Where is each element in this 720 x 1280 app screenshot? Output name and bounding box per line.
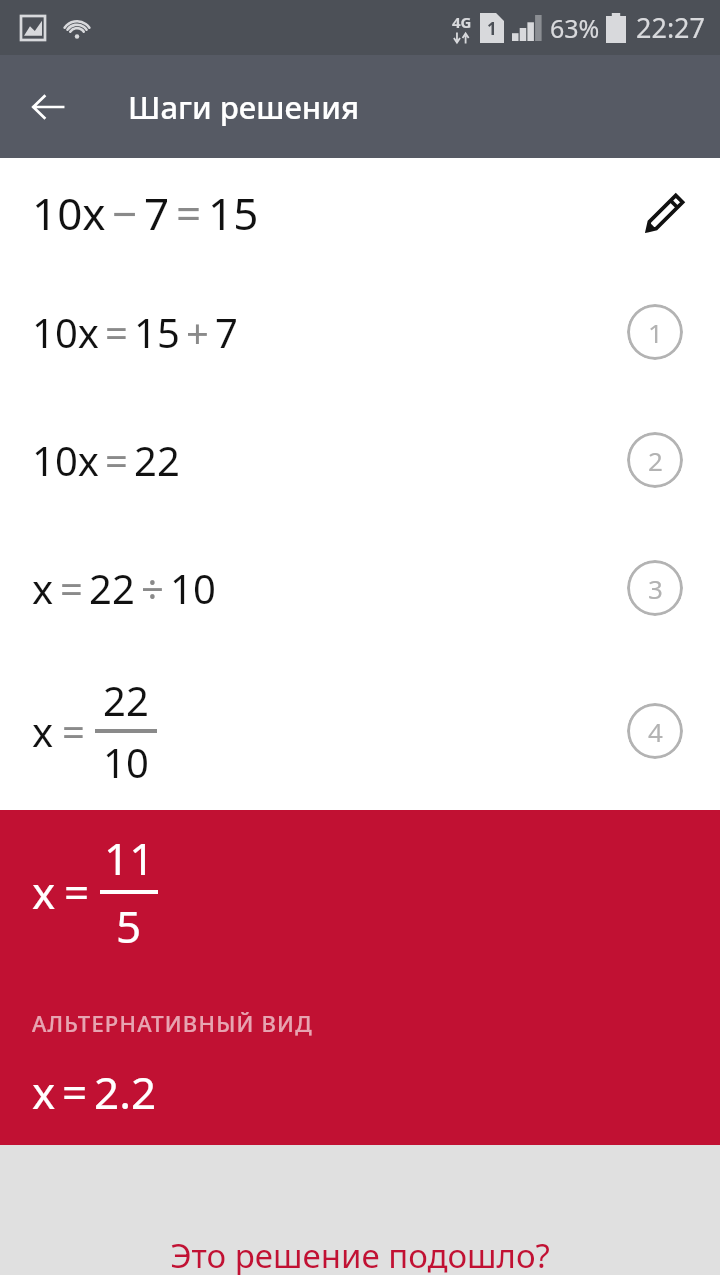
staticText: 22 xyxy=(103,673,149,727)
staticText: 2.2 xyxy=(94,1062,157,1122)
staticText: x xyxy=(32,561,54,615)
staticText: = xyxy=(105,305,128,359)
staticText: 22 xyxy=(89,561,135,615)
staticText: = xyxy=(105,433,128,487)
staticText: 4G xyxy=(452,12,472,32)
button[interactable]: 3 xyxy=(627,560,683,616)
button[interactable]: Это решение подошло? xyxy=(170,1233,550,1275)
staticText: 10 xyxy=(170,561,216,615)
staticText: = xyxy=(62,1062,88,1122)
button[interactable]: 10x xyxy=(0,268,720,396)
staticText: Шаги решения xyxy=(128,86,360,128)
button[interactable]: x xyxy=(0,652,720,810)
staticText: x xyxy=(32,704,54,758)
button[interactable]: Back xyxy=(18,77,78,137)
button[interactable]: 10x xyxy=(0,158,720,268)
staticText: 10 xyxy=(103,735,149,789)
staticText: 1 xyxy=(487,17,497,40)
staticText: 2 xyxy=(648,443,663,478)
staticText: + xyxy=(186,305,209,359)
staticText: 5 xyxy=(116,896,142,956)
staticText: ÷ xyxy=(141,561,164,615)
staticText: = xyxy=(62,704,85,758)
button[interactable]: Edit equation xyxy=(636,184,694,242)
button[interactable]: 4 xyxy=(627,703,683,759)
staticText: 10x xyxy=(32,433,99,487)
staticText: x xyxy=(32,862,56,922)
staticText: 10x xyxy=(32,305,99,359)
button[interactable]: x xyxy=(0,810,720,1145)
staticText: 15 xyxy=(134,305,180,359)
staticText: АЛЬТЕРНАТИВНЫЙ ВИД xyxy=(32,1008,313,1038)
staticText: x xyxy=(32,1062,56,1122)
staticText: 22:27 xyxy=(636,9,706,46)
staticText: 10x xyxy=(32,183,106,243)
staticText: 7 xyxy=(144,183,170,243)
button[interactable]: 10x xyxy=(0,396,720,524)
staticText: 11 xyxy=(104,828,155,888)
button[interactable]: x xyxy=(0,524,720,652)
staticText: − xyxy=(112,183,138,243)
staticText: 22 xyxy=(134,433,180,487)
staticText: 1 xyxy=(648,315,663,350)
staticText: 15 xyxy=(208,183,259,243)
staticText: 4 xyxy=(648,714,663,749)
staticText: 7 xyxy=(215,305,238,359)
staticText: 63% xyxy=(550,11,600,45)
staticText: = xyxy=(60,561,83,615)
staticText: = xyxy=(64,862,90,922)
staticText: 3 xyxy=(648,571,663,606)
staticText: = xyxy=(176,183,202,243)
button[interactable]: 1 xyxy=(627,304,683,360)
button[interactable]: 2 xyxy=(627,432,683,488)
